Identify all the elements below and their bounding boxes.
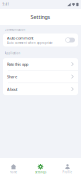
staticText: Share	[7, 74, 17, 79]
staticText: Settings	[35, 170, 46, 174]
staticText: Auto comment	[7, 35, 33, 41]
button[interactable]: Settings	[27, 159, 54, 179]
staticText: Auto comment when appropriate	[7, 41, 53, 45]
button[interactable]: Auto comment	[3, 33, 78, 46]
staticText: Home	[9, 170, 17, 174]
button[interactable]: About	[3, 83, 78, 95]
button[interactable]: Rate this app	[3, 58, 78, 70]
staticText: Application	[4, 51, 20, 55]
button[interactable]: Home	[0, 159, 27, 179]
staticText: Communication	[4, 28, 25, 31]
staticText: About	[7, 86, 17, 92]
button[interactable]: Share	[3, 71, 78, 83]
staticText: 9:41	[2, 3, 9, 6]
staticText: Profile	[62, 170, 72, 174]
staticText: Settings	[30, 13, 50, 21]
staticText: Rate this app	[7, 61, 28, 67]
button[interactable]: Profile	[54, 159, 81, 179]
